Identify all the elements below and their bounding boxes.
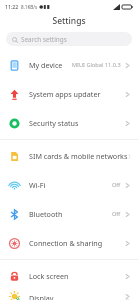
button[interactable]: Security status — [0, 111, 138, 135]
staticText: Off — [112, 210, 121, 218]
staticText: 8.1KB/s — [21, 4, 38, 10]
staticText: My device — [29, 60, 63, 70]
button[interactable]: System apps updater — [0, 82, 138, 106]
staticText: Search settings — [21, 35, 67, 44]
staticText: 11:22 — [5, 3, 19, 10]
button[interactable]: My device — [0, 53, 138, 77]
staticText: Lock screen — [29, 271, 69, 281]
staticText: System apps updater — [29, 89, 101, 99]
staticText: Wi-Fi — [29, 180, 46, 190]
button[interactable]: Bluetooth — [0, 202, 138, 226]
button[interactable]: Lock screen — [0, 264, 138, 288]
staticText: Off — [112, 181, 121, 189]
staticText: Bluetooth — [29, 209, 63, 219]
staticText: SIM cards & mobile networks — [29, 151, 128, 161]
button[interactable]: Connection & sharing — [0, 231, 138, 255]
staticText: Display — [29, 293, 54, 300]
button[interactable]: Wi-Fi — [0, 173, 138, 197]
staticText: Connection & sharing — [29, 238, 103, 248]
staticText: MIUI Global 11.0.3 — [72, 61, 121, 69]
button[interactable]: Search settings — [6, 32, 132, 46]
button[interactable]: SIM cards & mobile networks — [0, 144, 138, 168]
staticText: Security status — [29, 118, 79, 128]
staticText: Settings — [52, 15, 86, 27]
button[interactable]: Display — [0, 293, 138, 300]
